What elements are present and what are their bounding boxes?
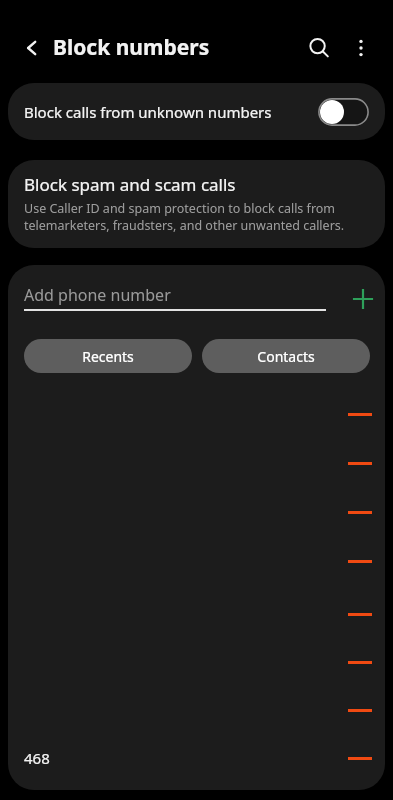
staticText: Block numbers <box>53 33 210 62</box>
staticText: Contacts <box>257 347 315 366</box>
staticText: Block calls from unknown numbers <box>24 102 318 122</box>
staticText: Use Caller ID and spam protection to blo… <box>24 200 369 234</box>
staticText: Recents <box>82 347 134 366</box>
button[interactable]: Block spam and scam calls <box>8 160 385 248</box>
button[interactable]: More options <box>340 27 382 69</box>
staticText: Add phone number <box>24 284 171 306</box>
staticText: 468 <box>24 748 50 768</box>
button[interactable]: Back <box>12 27 54 69</box>
button[interactable]: Add number <box>341 277 385 321</box>
button[interactable]: Block calls from unknown numbers <box>8 83 385 140</box>
button[interactable]: Recents <box>24 339 192 373</box>
button[interactable]: Search <box>298 27 340 69</box>
button[interactable]: Contacts <box>202 339 370 373</box>
staticText: Block spam and scam calls <box>24 173 236 196</box>
